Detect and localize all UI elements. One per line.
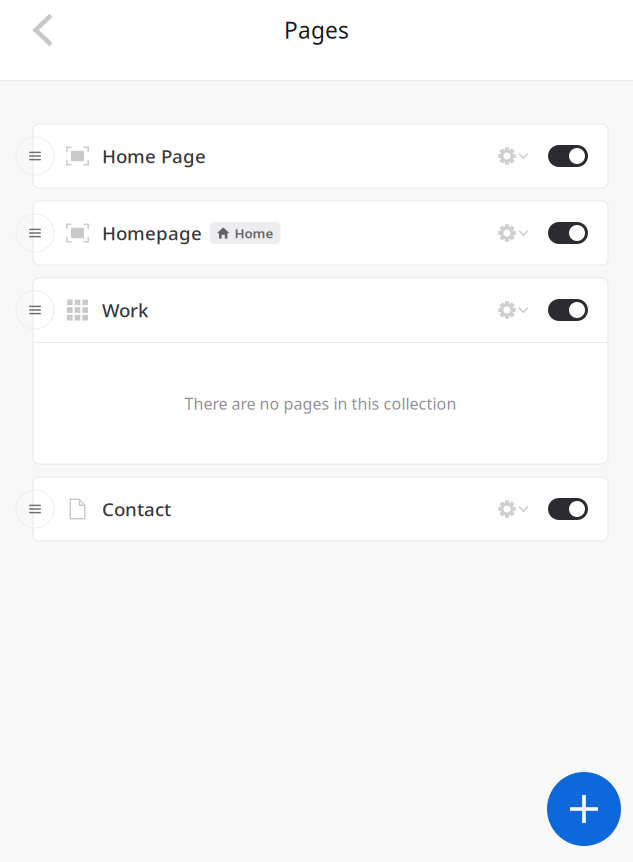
staticText: Homepage bbox=[102, 221, 202, 245]
staticText: Pages bbox=[284, 15, 349, 45]
button[interactable]: Page settings bbox=[493, 492, 534, 526]
button[interactable]: Page settings bbox=[493, 216, 534, 250]
button[interactable]: Page settings bbox=[493, 139, 534, 173]
button[interactable]: Page enabled bbox=[548, 293, 588, 327]
button[interactable]: Page enabled bbox=[548, 139, 588, 173]
button[interactable]: Page enabled bbox=[548, 216, 588, 250]
button[interactable]: Page enabled bbox=[548, 492, 588, 526]
button[interactable]: Home Page bbox=[33, 124, 608, 188]
staticText: Work bbox=[102, 298, 148, 322]
staticText: There are no pages in this collection bbox=[184, 393, 456, 414]
button[interactable]: Back bbox=[0, 0, 105, 60]
button[interactable]: Page settings bbox=[493, 293, 534, 327]
button[interactable]: Homepage bbox=[33, 201, 608, 265]
staticText: Home Page bbox=[102, 144, 206, 168]
button[interactable]: Add page bbox=[547, 772, 621, 846]
staticText: Contact bbox=[102, 497, 171, 521]
button[interactable]: Contact bbox=[33, 477, 608, 541]
button[interactable]: Work bbox=[33, 278, 608, 342]
staticText: Home bbox=[234, 224, 273, 242]
